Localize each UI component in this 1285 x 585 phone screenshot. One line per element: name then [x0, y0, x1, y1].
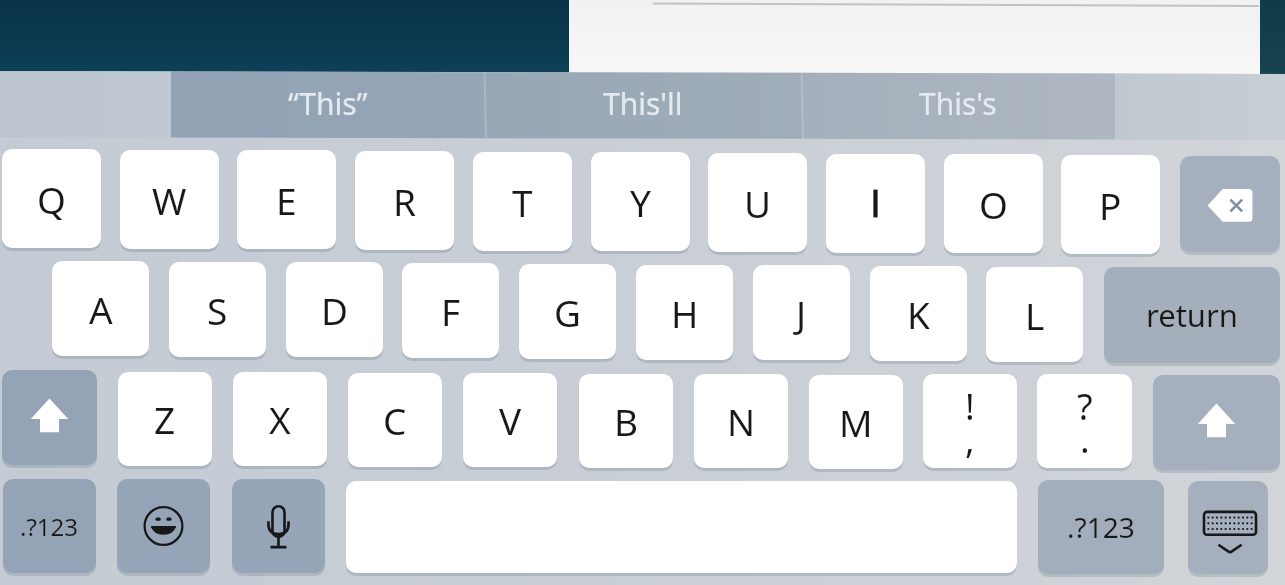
button[interactable]: C [348, 373, 442, 467]
staticText: Z [154, 394, 176, 444]
staticText: B [614, 396, 639, 446]
staticText: Y [630, 177, 651, 227]
button[interactable]: V [463, 373, 557, 467]
button[interactable]: Emoji [117, 479, 210, 573]
button[interactable]: W [120, 150, 219, 249]
staticText: P [1099, 180, 1122, 230]
staticText: “This” [288, 83, 368, 124]
button[interactable]: R [355, 151, 454, 250]
button[interactable]: This'll [484, 72, 801, 138]
staticText: .?123 [20, 510, 79, 543]
staticText: G [554, 287, 581, 337]
button[interactable]: Z [118, 372, 212, 466]
button[interactable]: return [1104, 267, 1280, 363]
button[interactable]: D [286, 262, 383, 357]
staticText: J [796, 288, 807, 338]
staticText: V [499, 395, 522, 445]
button[interactable]: Shift [2, 370, 97, 465]
staticText: , [965, 415, 975, 464]
button[interactable]: S [169, 262, 266, 357]
staticText: X [269, 394, 291, 444]
button[interactable]: O [944, 154, 1043, 253]
button[interactable]: ! [923, 374, 1017, 468]
staticText: U [744, 178, 772, 228]
staticText: ! [965, 382, 975, 431]
staticText: M [839, 397, 873, 447]
staticText: N [727, 396, 756, 446]
button[interactable]: X [233, 372, 327, 466]
staticText: K [907, 289, 930, 339]
staticText: . [1080, 415, 1090, 464]
button[interactable]: .?123 [3, 479, 96, 573]
staticText: T [512, 177, 533, 227]
button[interactable]: U [708, 153, 807, 252]
staticText: ? [1077, 382, 1093, 431]
button[interactable]: ? [1037, 374, 1132, 468]
staticText: E [276, 175, 297, 225]
button[interactable]: H [636, 265, 733, 360]
button[interactable]: G [519, 264, 616, 359]
button[interactable]: Hide keyboard [1188, 481, 1268, 574]
button[interactable] [826, 154, 925, 253]
button[interactable]: F [402, 263, 499, 358]
button[interactable]: N [694, 374, 788, 468]
staticText: This'll [603, 83, 683, 124]
staticText: A [89, 284, 113, 334]
button[interactable]: “This” [171, 72, 484, 138]
button[interactable]: P [1061, 155, 1160, 254]
staticText: R [393, 176, 417, 226]
button[interactable]: Shift [1153, 375, 1280, 470]
staticText: C [383, 395, 407, 445]
staticText: H [671, 288, 699, 338]
button[interactable]: This's [801, 72, 1115, 138]
button[interactable]: K [870, 266, 967, 361]
button[interactable]: .?123 [1038, 480, 1164, 574]
staticText: S [207, 285, 228, 335]
staticText: .?123 [1067, 508, 1135, 546]
staticText: F [441, 286, 461, 336]
button[interactable]: T [473, 152, 572, 251]
staticText: Q [37, 174, 66, 224]
button[interactable]: Q [2, 149, 101, 248]
button[interactable]: E [237, 150, 336, 249]
button[interactable]: A [52, 261, 149, 356]
staticText: return [1146, 294, 1238, 336]
staticText: This's [919, 83, 997, 124]
staticText: D [321, 285, 349, 335]
staticText: W [152, 175, 187, 225]
button[interactable]: L [986, 267, 1083, 362]
button[interactable]: Dictation [232, 479, 325, 573]
button[interactable]: Y [591, 152, 690, 251]
button[interactable]: J [753, 265, 850, 360]
button[interactable]: Backspace [1180, 156, 1280, 252]
staticText: L [1025, 290, 1045, 340]
button[interactable]: B [579, 374, 673, 468]
staticText: O [979, 179, 1008, 229]
button[interactable]: M [809, 375, 903, 469]
